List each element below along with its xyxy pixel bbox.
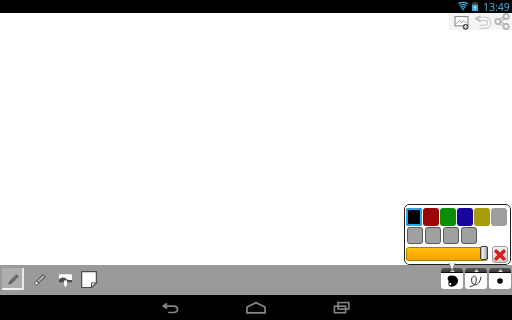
button[interactable]: Share	[492, 13, 512, 30]
button[interactable]: Tool	[54, 268, 76, 290]
button[interactable]: Recents	[299, 295, 385, 320]
button[interactable]	[406, 208, 422, 226]
button[interactable]	[461, 227, 477, 244]
button[interactable]: Brush size	[489, 268, 511, 289]
button[interactable]	[406, 247, 488, 261]
button[interactable]: Pencil	[2, 268, 24, 290]
button[interactable]: Colour	[441, 268, 463, 289]
button[interactable]	[423, 208, 439, 226]
staticText: 13:49	[483, 0, 510, 13]
button[interactable]: Insert image	[451, 13, 472, 30]
button[interactable]: Tool	[80, 268, 102, 290]
button[interactable]: Close palette	[492, 246, 508, 263]
button[interactable]	[440, 208, 456, 226]
button[interactable]	[491, 208, 507, 226]
button[interactable]: Home	[213, 295, 299, 320]
button[interactable]	[443, 227, 459, 244]
button[interactable]	[425, 227, 441, 244]
button[interactable]: Back	[127, 295, 213, 320]
button[interactable]: Stroke style	[465, 268, 487, 289]
button[interactable]: Undo	[472, 13, 493, 30]
button[interactable]	[407, 227, 423, 244]
button[interactable]	[474, 208, 490, 226]
button[interactable]	[457, 208, 473, 226]
button[interactable]: Tool	[28, 268, 50, 290]
